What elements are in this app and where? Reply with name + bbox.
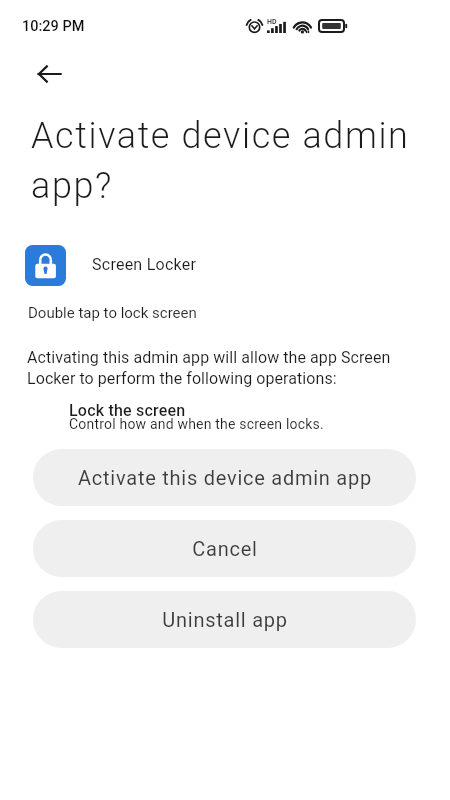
staticText: Double tap to lock screen [28,304,197,322]
staticText: Activate device admin app? [31,115,450,207]
button[interactable]: Activate this device admin app [33,449,416,506]
staticText: HD [267,18,277,26]
button[interactable]: Cancel [33,520,416,577]
staticText: Cancel [192,537,258,560]
button[interactable]: Uninstall app [33,591,416,648]
staticText: Activate this device admin app [78,466,372,489]
staticText: Control how and when the screen locks. [69,416,324,432]
staticText: Screen Locker [92,255,197,274]
staticText: Activating this admin app will allow the… [27,348,427,388]
staticText: 10:29 PM [22,18,85,35]
staticText: Lock the screen [69,401,186,420]
staticText: Uninstall app [162,608,288,631]
button[interactable]: Back [28,52,72,96]
